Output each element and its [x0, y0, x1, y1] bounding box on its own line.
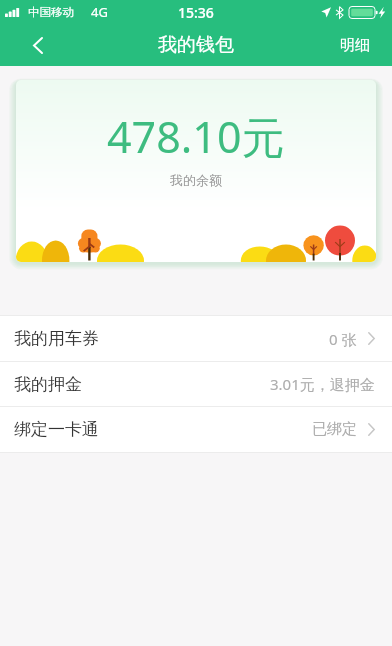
staticText: 15:36 [178, 3, 214, 22]
staticText: 已绑定 [312, 420, 357, 439]
staticText: 我的用车券 [14, 328, 99, 349]
button[interactable]: Back [0, 24, 75, 66]
staticText: 4G [91, 3, 108, 21]
staticText: 478.10元 [107, 107, 285, 166]
staticText: 我的押金 [14, 374, 82, 395]
staticText: 中国移动 [28, 5, 74, 19]
staticText: 我的钱包 [158, 33, 234, 57]
staticText: 明细 [340, 36, 370, 55]
staticText: 绑定一卡通 [14, 419, 99, 440]
button[interactable]: 我的用车券 [0, 316, 392, 361]
button[interactable]: 明细 [318, 24, 392, 66]
staticText: 0 张 [329, 329, 357, 349]
staticText: 我的余额 [170, 172, 222, 188]
button[interactable]: 绑定一卡通 [0, 407, 392, 452]
staticText: 3.01元，退押金 [270, 374, 375, 394]
button[interactable]: 我的押金 [0, 362, 392, 406]
